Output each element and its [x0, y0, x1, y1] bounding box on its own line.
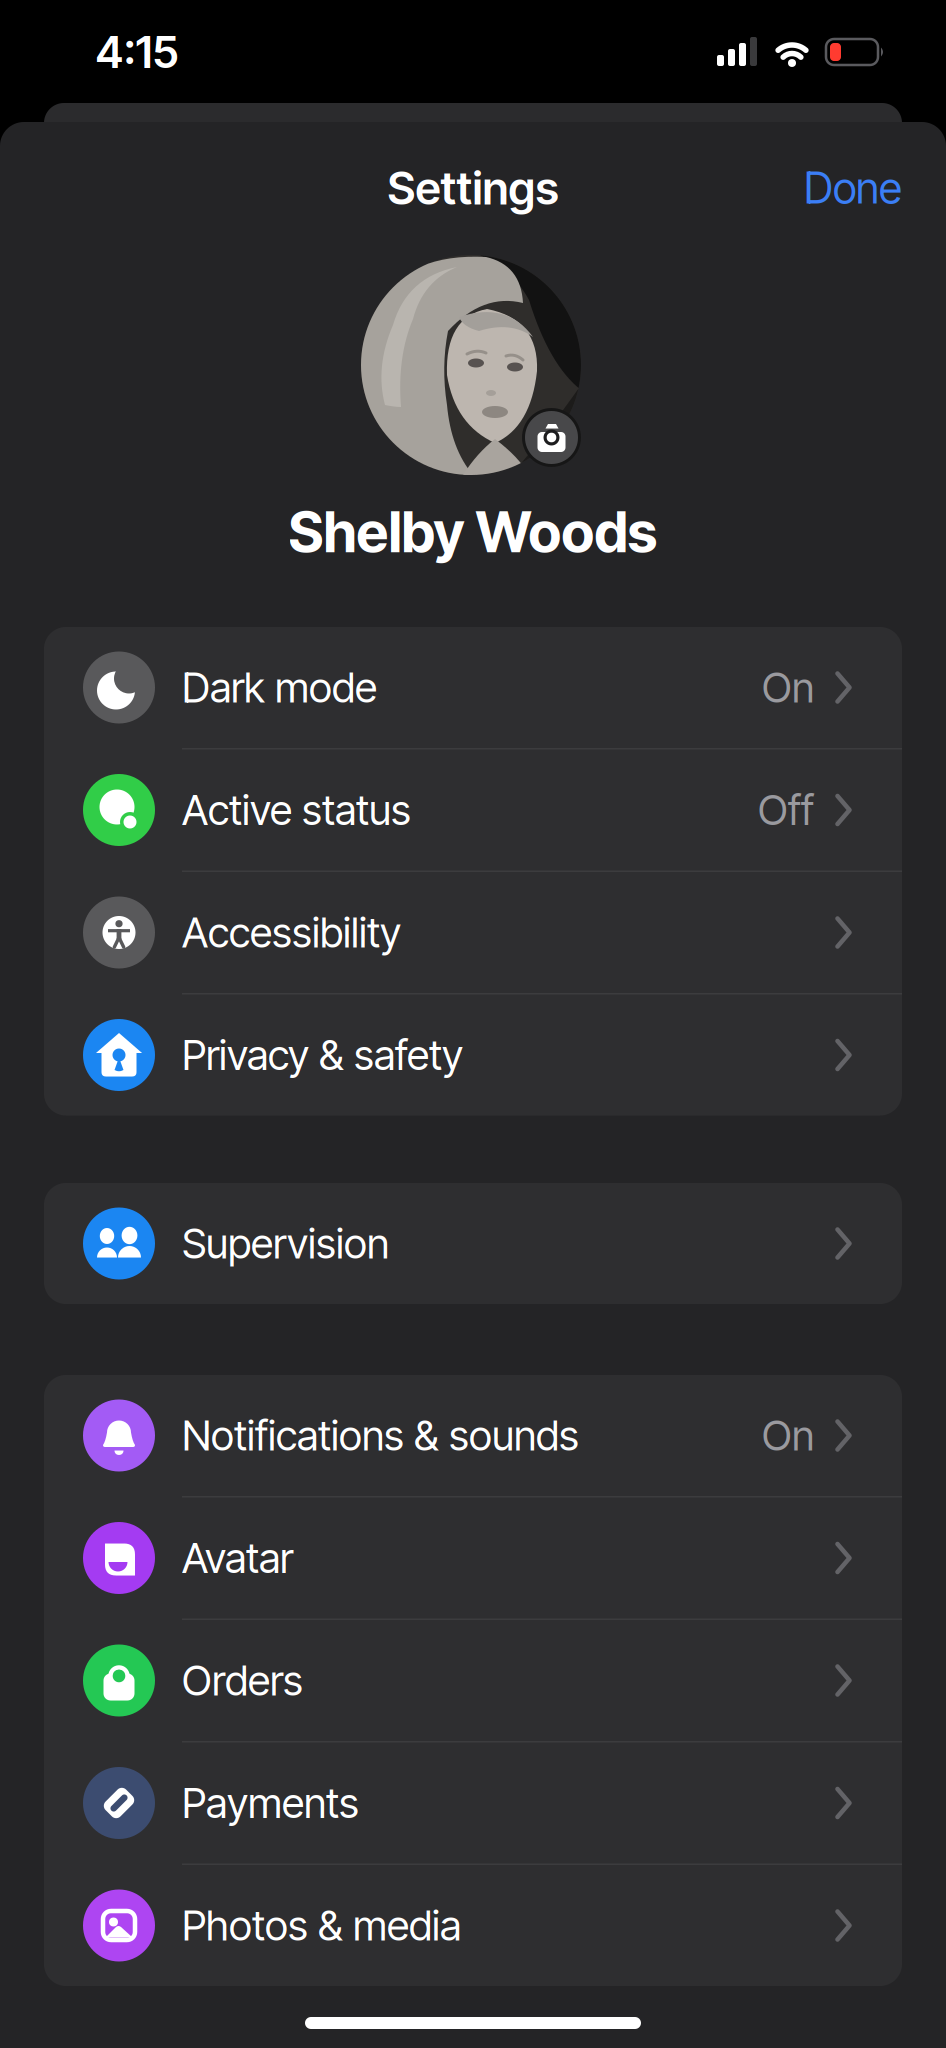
staticText: Photos & media — [182, 1901, 461, 1950]
button[interactable]: Accessibility — [44, 872, 902, 993]
staticText: Payments — [182, 1779, 359, 1827]
staticText: Privacy & safety — [182, 1031, 463, 1079]
staticText: 4:15 — [95, 26, 178, 78]
staticText: Settings — [387, 161, 558, 215]
button[interactable]: Supervision — [44, 1183, 902, 1304]
staticText: Shelby Woods — [288, 499, 657, 565]
button[interactable]: Avatar — [44, 1497, 902, 1618]
staticText: On — [762, 1411, 814, 1460]
staticText: Notifications & sounds — [182, 1411, 579, 1460]
staticText: Supervision — [182, 1219, 389, 1268]
button[interactable]: Photos & media — [44, 1865, 902, 1986]
button[interactable]: Dark mode — [44, 627, 902, 748]
button[interactable]: Change profile photo — [522, 408, 581, 467]
button[interactable]: Notifications & sounds — [44, 1375, 902, 1496]
button[interactable]: Payments — [44, 1742, 902, 1863]
button[interactable]: Done — [702, 162, 902, 214]
button[interactable]: Profile photo — [361, 255, 581, 475]
staticText: Dark mode — [182, 663, 377, 712]
staticText: Avatar — [182, 1534, 293, 1582]
staticText: Off — [758, 786, 814, 834]
button[interactable]: Active status — [44, 749, 902, 870]
staticText: Done — [804, 163, 902, 213]
button[interactable]: Orders — [44, 1620, 902, 1741]
staticText: Active status — [182, 786, 411, 834]
staticText: On — [762, 663, 814, 712]
staticText: Orders — [182, 1656, 303, 1705]
button[interactable]: Privacy & safety — [44, 994, 902, 1115]
staticText: Accessibility — [182, 908, 401, 957]
